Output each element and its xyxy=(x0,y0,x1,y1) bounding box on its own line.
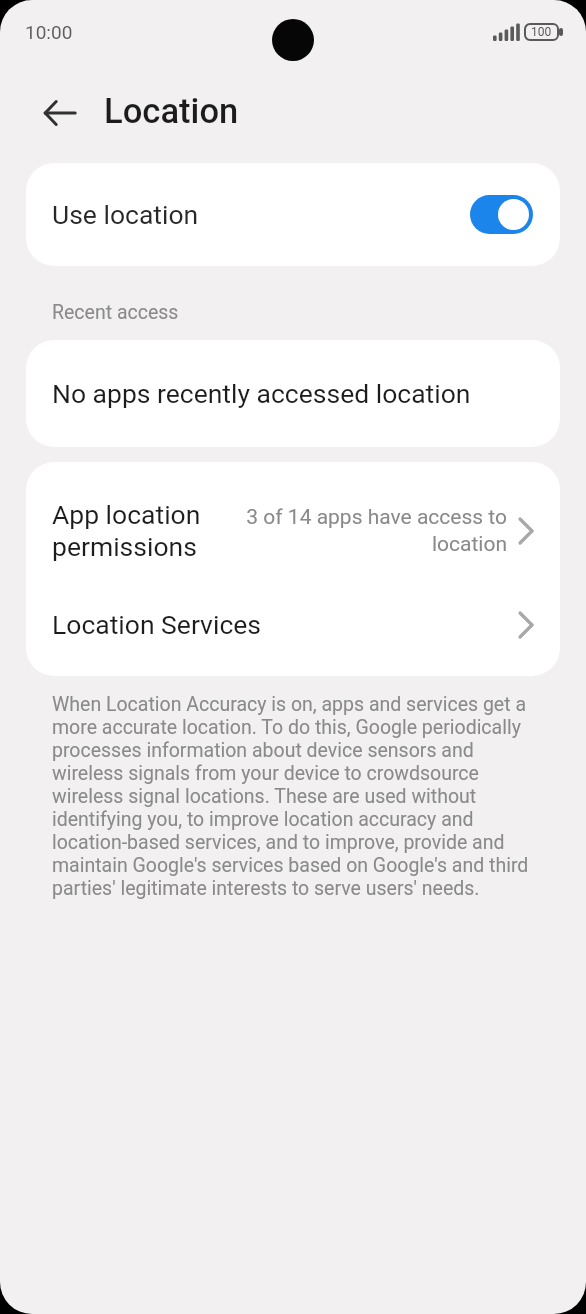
staticText: Location Services xyxy=(52,609,261,640)
staticText: Location xyxy=(104,91,239,131)
button[interactable]: Use location xyxy=(26,163,560,266)
staticText: No apps recently accessed location xyxy=(52,378,471,409)
button[interactable] xyxy=(36,92,83,134)
staticText: 100 xyxy=(531,25,552,39)
button[interactable]: No apps recently accessed location xyxy=(26,340,560,447)
button[interactable] xyxy=(470,195,533,234)
staticText: When Location Accuracy is on, apps and s… xyxy=(52,693,529,900)
staticText: 10:00 xyxy=(25,21,73,43)
button[interactable]: Location Services xyxy=(26,569,560,676)
staticText: App location permissions xyxy=(52,499,201,563)
button[interactable]: App location permissions xyxy=(26,462,560,569)
staticText: Recent access xyxy=(52,301,179,324)
staticText: Use location xyxy=(52,199,199,230)
staticText: 3 of 14 apps have access to location xyxy=(246,505,507,557)
